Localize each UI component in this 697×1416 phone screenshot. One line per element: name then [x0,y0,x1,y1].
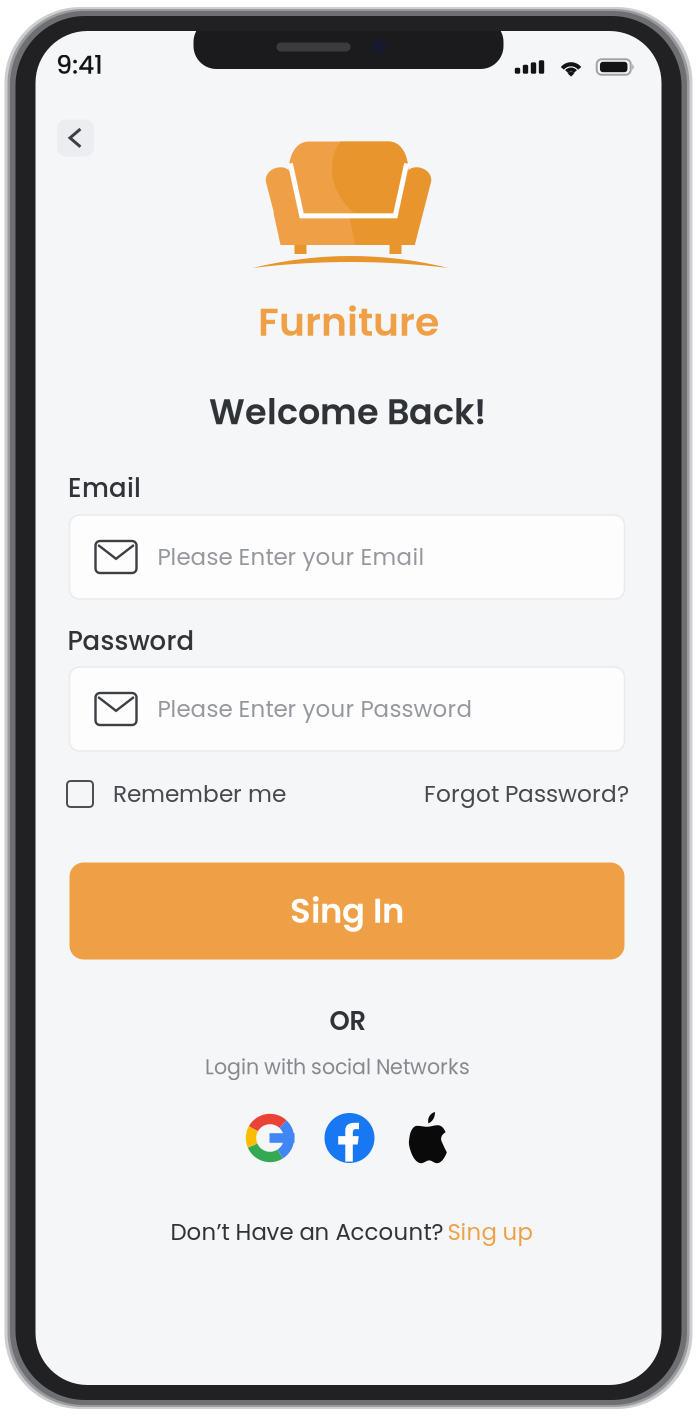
button[interactable]: Sign in with Google [245,1113,295,1163]
staticText: Email [68,470,141,506]
button[interactable]: Sing In [69,862,624,959]
staticText: Sing up [447,1216,532,1248]
button[interactable]: Remember me [67,778,286,810]
staticText: Sing In [290,887,404,935]
button[interactable]: Forgot Password? [424,778,629,810]
staticText: Forgot Password? [424,778,629,810]
staticText: Don’t Have an Account? [170,1216,443,1248]
button[interactable]: Sign in with Apple [405,1112,450,1164]
staticText: 9:41 [56,47,103,83]
staticText: Login with social Networks [205,1053,470,1081]
staticText: Welcome Back! [209,387,486,436]
staticText: Furniture [258,294,439,350]
staticText: Please Enter your Password [157,693,472,725]
button[interactable]: Back [57,119,94,156]
button[interactable]: Sing up [443,1216,532,1248]
staticText: Please Enter your Email [157,541,424,573]
button[interactable]: Sign in with Facebook [324,1113,374,1163]
staticText: OR [329,1003,365,1039]
staticText: Password [67,623,194,659]
staticText: Remember me [113,778,286,810]
